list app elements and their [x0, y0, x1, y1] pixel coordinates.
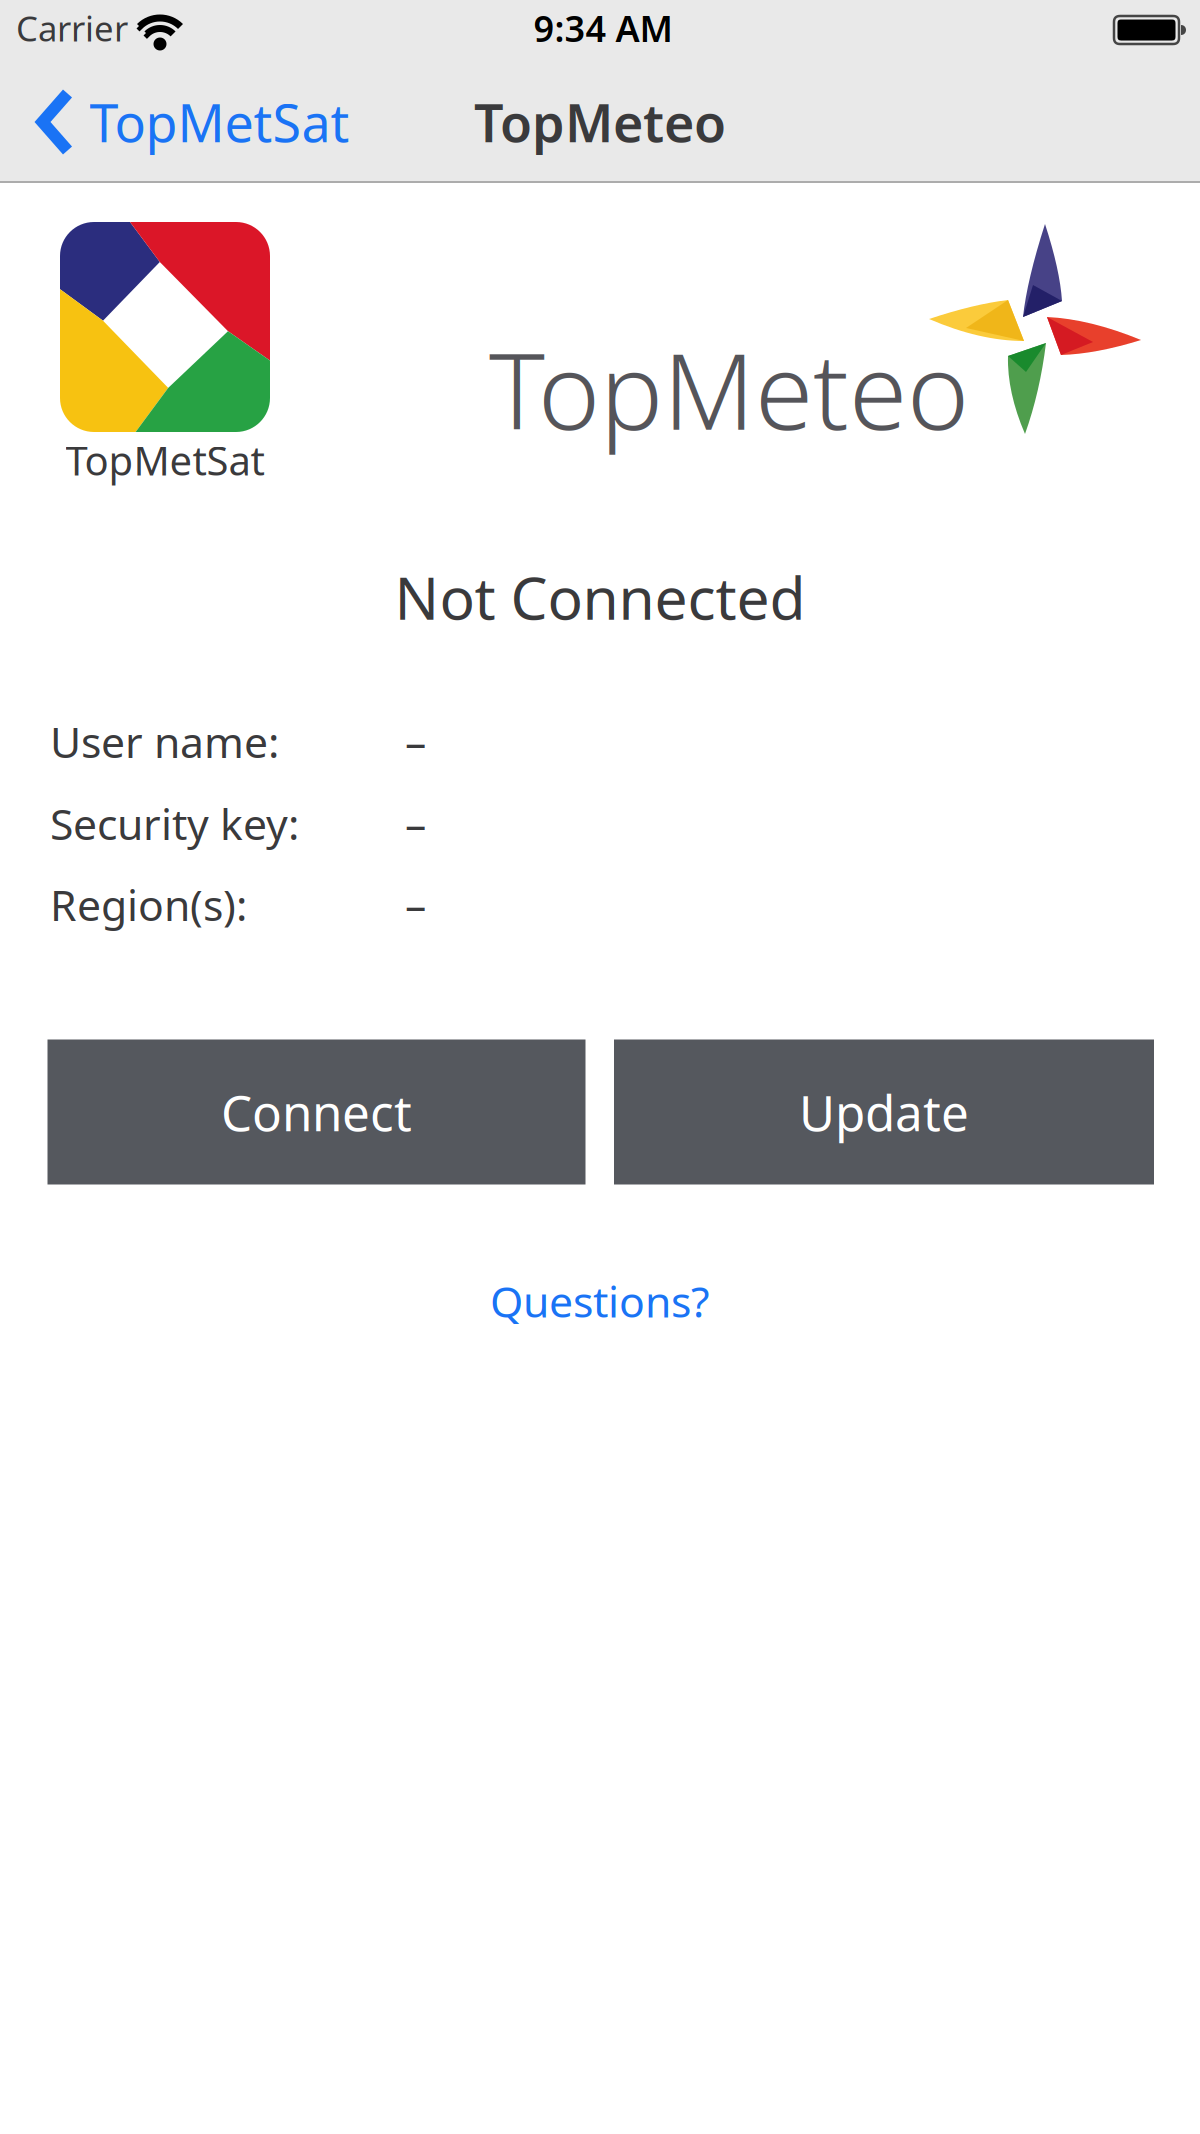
staticText: TopMetSat [65, 433, 264, 486]
staticText: Security key: [50, 795, 299, 852]
staticText: TopMeteo [489, 319, 969, 459]
staticText: Carrier [16, 5, 128, 51]
staticText: – [405, 795, 426, 852]
staticText: – [405, 713, 426, 770]
staticText: User name: [50, 713, 279, 770]
staticText: 9:34 AM [533, 4, 672, 52]
staticText: Region(s): [50, 876, 247, 933]
button[interactable]: TopMetSat [36, 87, 349, 157]
staticText: – [405, 876, 426, 933]
staticText: TopMetSat [89, 87, 349, 157]
button[interactable]: Questions? [490, 1273, 710, 1329]
staticText: Questions? [490, 1273, 710, 1329]
button[interactable]: Update [614, 1039, 1154, 1184]
staticText: Connect [221, 1079, 412, 1145]
staticText: Not Connected [394, 558, 805, 636]
staticText: TopMeteo [474, 87, 726, 157]
button[interactable]: Connect [47, 1039, 585, 1184]
staticText: Update [799, 1079, 969, 1145]
